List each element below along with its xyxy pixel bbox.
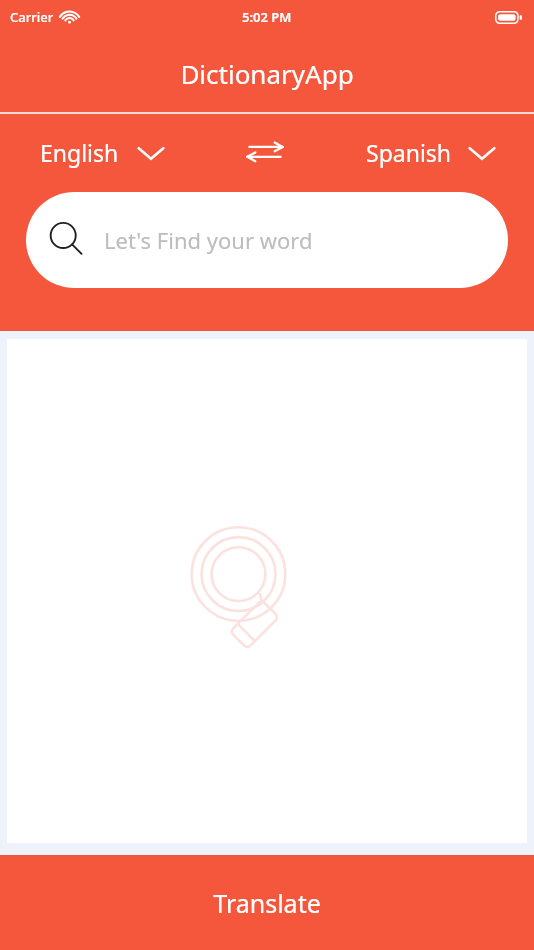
staticText: 5:02 PM bbox=[242, 8, 292, 26]
staticText: Let's Find your word bbox=[104, 225, 313, 255]
button[interactable]: English bbox=[40, 137, 165, 168]
staticText: Carrier bbox=[10, 8, 54, 26]
button[interactable]: Translate bbox=[0, 855, 534, 950]
staticText: Translate bbox=[213, 886, 321, 920]
staticText: Spanish bbox=[366, 137, 452, 168]
button[interactable]: Spanish bbox=[366, 137, 496, 168]
staticText: English bbox=[40, 137, 119, 168]
button[interactable]: Swap languages bbox=[243, 130, 287, 174]
button[interactable]: Let's Find your word bbox=[26, 192, 508, 288]
staticText: DictionaryApp bbox=[180, 56, 354, 91]
